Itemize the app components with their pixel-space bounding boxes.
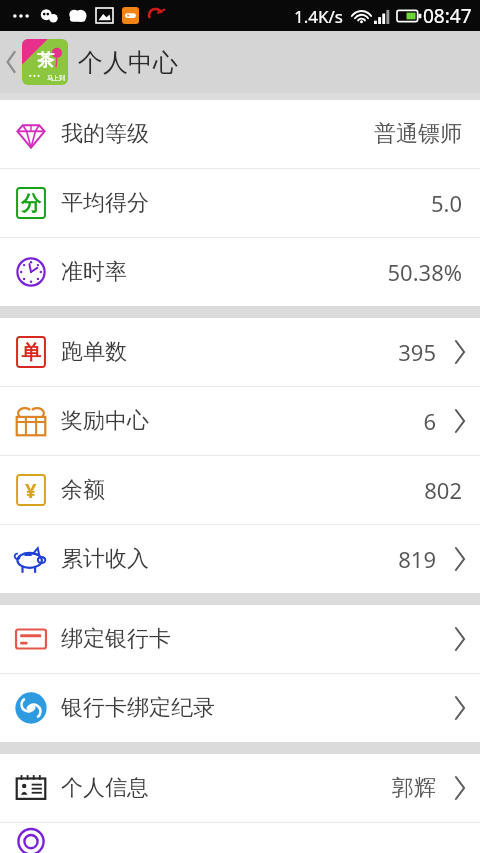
staticText: 我的等级 xyxy=(61,120,149,148)
button[interactable]: 奖励中心 xyxy=(0,387,480,455)
button[interactable]: 绑定银行卡 xyxy=(0,605,480,673)
button[interactable]: 银行卡绑定纪录 xyxy=(0,674,480,742)
staticText: 分 xyxy=(21,191,41,216)
staticText: 银行卡绑定纪录 xyxy=(61,694,215,722)
staticText: 余额 xyxy=(61,476,105,504)
staticText: 单 xyxy=(21,340,41,365)
button[interactable] xyxy=(0,823,480,853)
staticText: 08:47 xyxy=(423,3,472,29)
staticText: 5.0 xyxy=(430,188,462,218)
staticText: 绑定银行卡 xyxy=(61,625,171,653)
staticText: 6 xyxy=(423,406,436,436)
staticText: 802 xyxy=(424,475,462,505)
button[interactable]: 个人信息 xyxy=(0,754,480,822)
staticText: 1.4K/s xyxy=(294,5,343,28)
button[interactable]: 累计收入 xyxy=(0,525,480,593)
staticText: 395 xyxy=(398,337,436,367)
staticText: ¥ xyxy=(25,477,37,504)
button[interactable]: ¥ xyxy=(0,456,480,524)
staticText: 马上到 xyxy=(47,74,65,82)
staticText: 个人信息 xyxy=(61,774,149,802)
staticText: 累计收入 xyxy=(61,545,149,573)
staticText: 茶 xyxy=(37,50,54,71)
staticText: 平均得分 xyxy=(61,189,149,217)
button[interactable]: 我的等级 xyxy=(0,100,480,168)
button[interactable]: 准时率 xyxy=(0,238,480,306)
staticText: 普通镖师 xyxy=(374,120,462,148)
staticText: 郭辉 xyxy=(392,774,436,802)
staticText: 50.38% xyxy=(387,257,462,287)
button[interactable]: 分 xyxy=(0,169,480,237)
staticText: 819 xyxy=(398,544,436,574)
staticText: 个人中心 xyxy=(78,47,178,78)
staticText: 奖励中心 xyxy=(61,407,149,435)
staticText: 跑单数 xyxy=(61,338,127,366)
button[interactable]: 单 xyxy=(0,318,480,386)
button[interactable]: Back xyxy=(0,31,22,93)
staticText: 准时率 xyxy=(61,258,127,286)
